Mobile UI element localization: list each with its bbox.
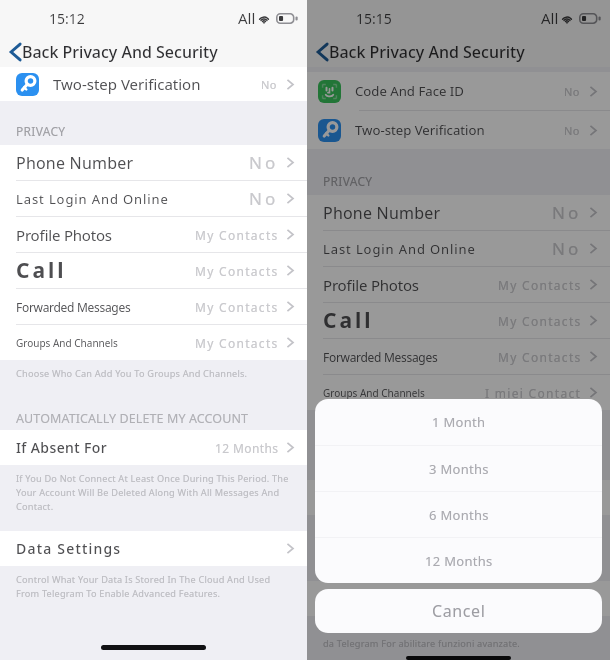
button[interactable]: 12 Months	[315, 538, 602, 583]
staticText: My Contacts	[195, 227, 279, 243]
staticText: Forwarded Messages	[323, 349, 438, 365]
staticText: If You Do Not Connect At Least Once Duri…	[16, 472, 289, 513]
button[interactable]: Data Settings	[0, 531, 307, 566]
button[interactable]: Phone Number	[307, 195, 610, 230]
button[interactable]: Groups And Channels	[307, 375, 610, 410]
button[interactable]: Back	[307, 41, 533, 63]
staticText: AUTOMATICALLY DELETE MY ACCOUNT	[323, 460, 556, 477]
staticText: 6 Months	[429, 506, 489, 524]
staticText: Profile Photos	[16, 225, 112, 245]
button[interactable]: 1 Month	[315, 399, 602, 445]
staticText: PRIVACY	[323, 173, 373, 189]
button[interactable]: Call	[0, 253, 307, 288]
staticText: No	[552, 237, 582, 260]
staticText: No	[552, 201, 582, 224]
staticText: Phone Number	[323, 202, 441, 224]
staticText: 15:15	[356, 9, 392, 28]
staticText: No	[564, 123, 581, 138]
button[interactable]: Forwarded Messages	[307, 339, 610, 374]
button[interactable]: Last Login And Online	[0, 181, 307, 216]
button[interactable]: Last Login And Online	[307, 231, 610, 266]
staticText: Call	[16, 256, 67, 285]
staticText: Back Privacy And Security	[329, 41, 525, 63]
staticText: Choose Who Can Add You To Groups And Cha…	[323, 417, 555, 430]
staticText: 15:12	[49, 9, 85, 28]
button[interactable]: Two-step Verification	[307, 111, 610, 149]
staticText: No	[249, 187, 279, 210]
button[interactable]: Profile Photos	[0, 217, 307, 252]
button[interactable]: Profile Photos	[307, 267, 610, 302]
button[interactable]: Two-step Verification	[0, 67, 307, 101]
staticText: My Contacts	[498, 349, 582, 365]
staticText: 3 Months	[429, 460, 489, 478]
staticText: Back Privacy And Security	[22, 41, 218, 63]
button[interactable]: Groups And Channels	[0, 325, 307, 360]
staticText: Forwarded Messages	[16, 299, 131, 315]
staticText: Two-step Verification	[355, 121, 485, 139]
staticText: Control What Your Data Is Stored In The …	[16, 573, 271, 600]
button[interactable]: Cancel	[315, 589, 602, 633]
staticText: My Contacts	[498, 313, 582, 329]
staticText: All	[541, 8, 559, 28]
staticText: All	[238, 8, 256, 28]
staticText: 1 Month	[432, 413, 486, 431]
staticText: Profile Photos	[323, 275, 419, 295]
staticText: I miei Contact	[485, 385, 582, 401]
button[interactable]: Data Settings	[307, 581, 610, 616]
staticText: My Contacts	[195, 263, 279, 279]
staticText: No	[564, 84, 581, 99]
button[interactable]: 3 Months	[315, 446, 602, 491]
staticText: Two-step Verification	[53, 74, 201, 94]
staticText: My Contacts	[195, 335, 279, 351]
staticText: Last Login And Online	[16, 190, 169, 208]
staticText: If You Do Not Connect At Least Once Duri…	[323, 522, 596, 563]
staticText: Data Settings	[16, 539, 122, 558]
button[interactable]: Call	[307, 303, 610, 338]
staticText: Phone Number	[16, 152, 134, 174]
staticText: No	[261, 77, 278, 92]
staticText: PRIVACY	[16, 123, 66, 139]
staticText: Groups And Channels	[16, 336, 118, 350]
staticText: Call	[323, 306, 374, 335]
staticText: Control What Your Data Is Stored In The …	[323, 623, 578, 650]
staticText: My Contacts	[498, 277, 582, 293]
button[interactable]: If Absent For	[0, 430, 307, 465]
staticText: Cancel	[432, 600, 486, 622]
button[interactable]: Back	[0, 41, 226, 63]
button[interactable]: Code And Face ID	[307, 72, 610, 110]
button[interactable]: Forwarded Messages	[0, 289, 307, 324]
staticText: 12 Months	[215, 440, 279, 456]
staticText: If Absent For	[16, 438, 108, 457]
button[interactable]: If Absent For	[307, 480, 610, 515]
button[interactable]: 6 Months	[315, 492, 602, 537]
staticText: My Contacts	[195, 299, 279, 315]
staticText: No	[249, 151, 279, 174]
staticText: Code And Face ID	[355, 82, 464, 100]
button[interactable]: Phone Number	[0, 145, 307, 180]
staticText: Groups And Channels	[323, 386, 425, 400]
staticText: Last Login And Online	[323, 240, 476, 258]
staticText: Choose Who Can Add You To Groups And Cha…	[16, 367, 248, 380]
staticText: 12 Months	[425, 552, 493, 570]
staticText: AUTOMATICALLY DELETE MY ACCOUNT	[16, 410, 249, 427]
